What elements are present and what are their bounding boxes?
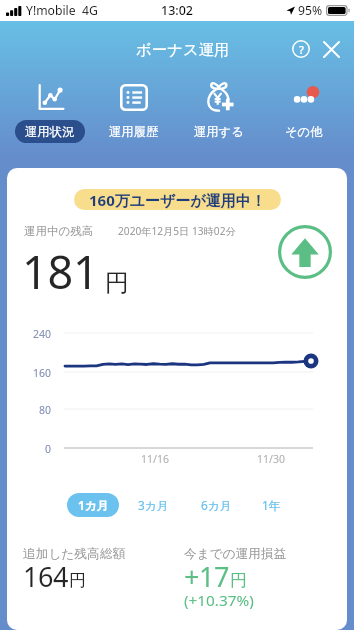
staticText: 円 [230, 570, 247, 591]
staticText: 2020年12月5日 13時02分 [118, 224, 236, 238]
staticText: 80 [39, 403, 52, 417]
button[interactable]: 運用履歴 [92, 82, 176, 148]
staticText: +17 [184, 558, 230, 595]
staticText: 運用する [194, 124, 244, 139]
staticText: 運用状況 [25, 124, 75, 139]
staticText: ボーナス運用 [136, 40, 230, 59]
staticText: その他 [285, 124, 323, 139]
staticText: 4G [82, 2, 98, 19]
button[interactable]: 1カ月 [67, 493, 119, 517]
staticText: 1カ月 [78, 497, 109, 513]
staticText: Y!mobile [26, 2, 76, 19]
staticText: 181 [22, 241, 99, 302]
button[interactable]: Close [317, 35, 345, 63]
staticText: 1年 [262, 497, 281, 513]
staticText: 13:02 [161, 2, 194, 19]
staticText: ? [299, 42, 304, 57]
staticText: 160万ユーザーが運用中！ [89, 190, 266, 210]
button[interactable]: Increase [278, 225, 332, 279]
staticText: (+10.37%) [184, 590, 254, 611]
staticText: 円 [105, 268, 129, 298]
button[interactable]: 運用状況 [8, 82, 92, 148]
button[interactable]: その他 [262, 82, 346, 148]
button[interactable]: 運用する [177, 82, 261, 148]
staticText: 運用履歴 [109, 124, 159, 139]
button[interactable]: Help [287, 35, 315, 63]
button[interactable]: 3カ月 [130, 493, 176, 517]
staticText: 11/30 [257, 452, 285, 466]
staticText: 追加した残高総額 [23, 546, 126, 562]
staticText: 6カ月 [201, 497, 232, 513]
button[interactable]: 160万ユーザーが運用中！ [74, 189, 281, 210]
staticText: 円 [69, 570, 86, 591]
staticText: 0 [45, 442, 52, 456]
staticText: 3カ月 [138, 497, 169, 513]
staticText: 164 [23, 558, 69, 595]
staticText: 95% [298, 2, 323, 19]
button[interactable]: 6カ月 [193, 493, 239, 517]
button[interactable]: 1年 [251, 493, 291, 517]
staticText: 運用中の残高 [24, 224, 94, 238]
staticText: 160 [33, 366, 52, 380]
staticText: 11/16 [141, 452, 169, 466]
staticText: 240 [33, 327, 52, 341]
staticText: 今までの運用損益 [184, 546, 287, 562]
